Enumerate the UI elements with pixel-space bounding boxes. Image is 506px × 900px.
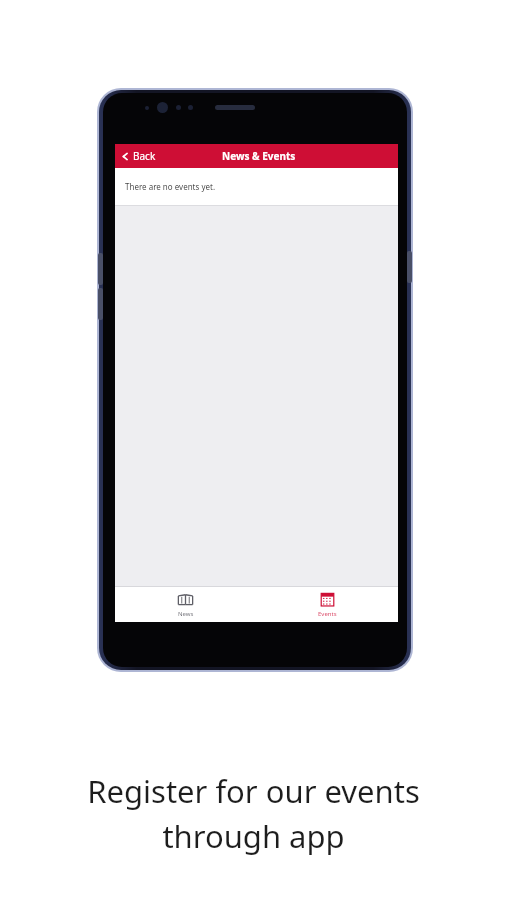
staticText: News & Events	[222, 149, 296, 163]
staticText: Register for our events	[87, 770, 420, 812]
button[interactable]: There are no events yet.	[115, 168, 398, 205]
staticText: through app	[162, 815, 345, 857]
other: Events	[319, 591, 336, 608]
button[interactable]: News	[115, 587, 256, 622]
staticText: Back	[133, 149, 156, 163]
staticText: News	[178, 610, 194, 618]
other: News	[177, 591, 194, 608]
button[interactable]: Events	[256, 587, 398, 622]
button[interactable]: Back	[115, 149, 162, 163]
staticText: Events	[318, 610, 337, 618]
staticText: There are no events yet.	[125, 181, 216, 192]
